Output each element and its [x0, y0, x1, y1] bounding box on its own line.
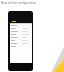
- button[interactable]: [10, 36, 32, 39]
- button[interactable]: [10, 39, 32, 42]
- button[interactable]: [10, 45, 32, 48]
- button[interactable]: [10, 33, 32, 36]
- staticText: New vehicle configuration: [1, 1, 37, 5]
- button[interactable]: [10, 27, 32, 30]
- button[interactable]: [10, 42, 32, 45]
- button[interactable]: [10, 30, 32, 33]
- button[interactable]: [10, 24, 32, 27]
